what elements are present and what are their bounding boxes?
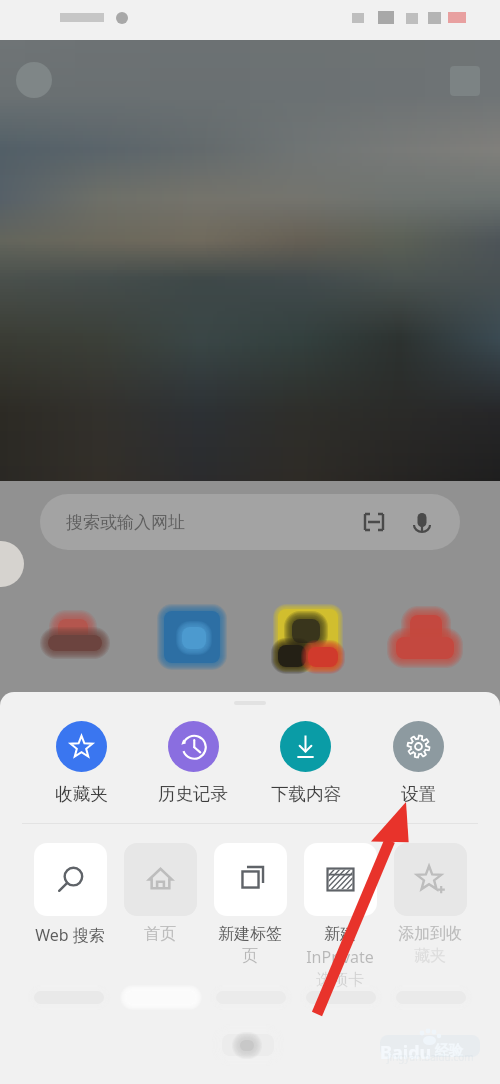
staticText: 新建 <box>324 924 356 944</box>
staticText: 搜索或输入网址 <box>66 512 185 533</box>
button[interactable]: Voice search <box>410 510 434 534</box>
staticText: 首页 <box>144 924 176 944</box>
button[interactable]: 新建标签页 <box>205 843 295 966</box>
staticText: jingyan.baidu.com <box>387 1050 474 1064</box>
staticText: 藏夹 <box>414 946 446 966</box>
button[interactable]: 历史记录 <box>137 721 249 805</box>
staticText: 下载内容 <box>271 783 341 805</box>
staticText: 选项卡 <box>316 970 364 990</box>
staticText: Web 搜索 <box>35 924 105 946</box>
button[interactable]: Profile <box>16 62 52 98</box>
button[interactable]: 首页 <box>115 843 205 944</box>
staticText: 收藏夹 <box>55 783 108 805</box>
button[interactable]: 新建InPrivate选项卡 <box>295 843 385 990</box>
staticText: 经验 <box>435 1042 463 1060</box>
staticText: 添加到收 <box>398 924 462 944</box>
button[interactable]: Web 搜索 <box>25 843 115 946</box>
button[interactable]: 下载内容 <box>249 721 362 805</box>
button[interactable]: 搜索或输入网址 <box>40 494 460 550</box>
staticText: 设置 <box>401 783 436 805</box>
other: 新建InPrivate选项卡 <box>304 843 377 916</box>
button[interactable]: 添加到收藏夹 <box>385 843 475 966</box>
button[interactable]: 收藏夹 <box>25 721 137 805</box>
other: 首页 <box>124 843 197 916</box>
staticText: 历史记录 <box>158 783 228 805</box>
other: Web 搜索 <box>34 843 107 916</box>
staticText: Baidu <box>380 1040 432 1065</box>
staticText: 页 <box>242 946 258 966</box>
other: 新建标签页 <box>214 843 287 916</box>
staticText: InPrivate <box>306 946 374 968</box>
button[interactable]: 设置 <box>362 721 475 805</box>
other: 添加到收藏夹 <box>394 843 467 916</box>
button[interactable]: Scan <box>362 510 386 534</box>
staticText: 新建标签 <box>218 924 282 944</box>
